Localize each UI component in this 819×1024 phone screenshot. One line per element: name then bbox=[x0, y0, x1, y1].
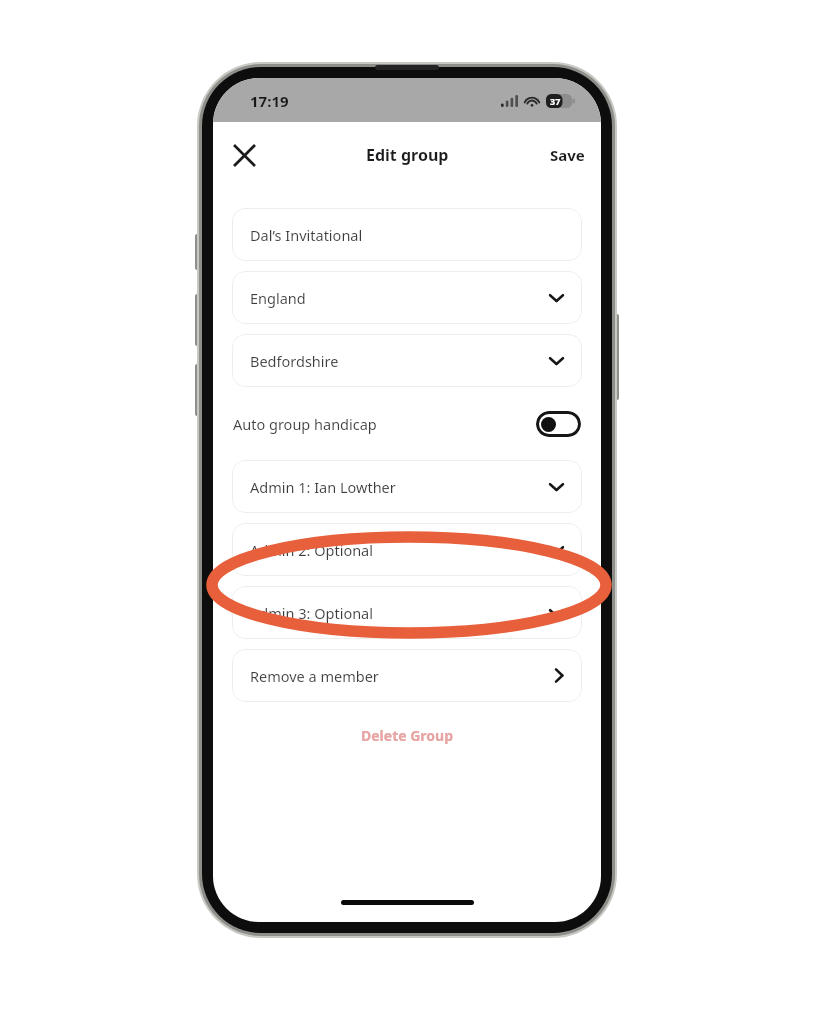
other: Auto group handicap bbox=[536, 411, 581, 437]
button[interactable]: Remove a member bbox=[232, 649, 582, 702]
button[interactable]: Save bbox=[534, 134, 601, 176]
button[interactable]: Auto group handicap bbox=[232, 397, 582, 450]
staticText: 37 bbox=[550, 95, 561, 107]
staticText: 17:19 bbox=[250, 91, 289, 111]
staticText: Admin 2: Optional bbox=[250, 540, 373, 560]
staticText: Admin 1: Ian Lowther bbox=[250, 477, 396, 497]
staticText: Edit group bbox=[366, 144, 449, 166]
staticText: Delete Group bbox=[361, 726, 454, 745]
button[interactable]: Delete Group bbox=[213, 720, 601, 751]
button[interactable]: Admin 3: Optional bbox=[232, 586, 582, 639]
staticText: England bbox=[250, 288, 306, 308]
staticText: Auto group handicap bbox=[233, 414, 377, 434]
button[interactable]: Close bbox=[221, 132, 267, 178]
staticText: Bedfordshire bbox=[250, 351, 339, 371]
button[interactable]: Dal’s Invitational bbox=[232, 208, 582, 261]
button[interactable]: England bbox=[232, 271, 582, 324]
staticText: Save bbox=[550, 145, 585, 165]
button[interactable]: Bedfordshire bbox=[232, 334, 582, 387]
button[interactable]: Admin 1: Ian Lowther bbox=[232, 460, 582, 513]
staticText: Admin 3: Optional bbox=[250, 603, 373, 623]
button[interactable]: Admin 2: Optional bbox=[232, 523, 582, 576]
staticText: Remove a member bbox=[250, 666, 379, 686]
staticText: Dal’s Invitational bbox=[250, 225, 363, 245]
